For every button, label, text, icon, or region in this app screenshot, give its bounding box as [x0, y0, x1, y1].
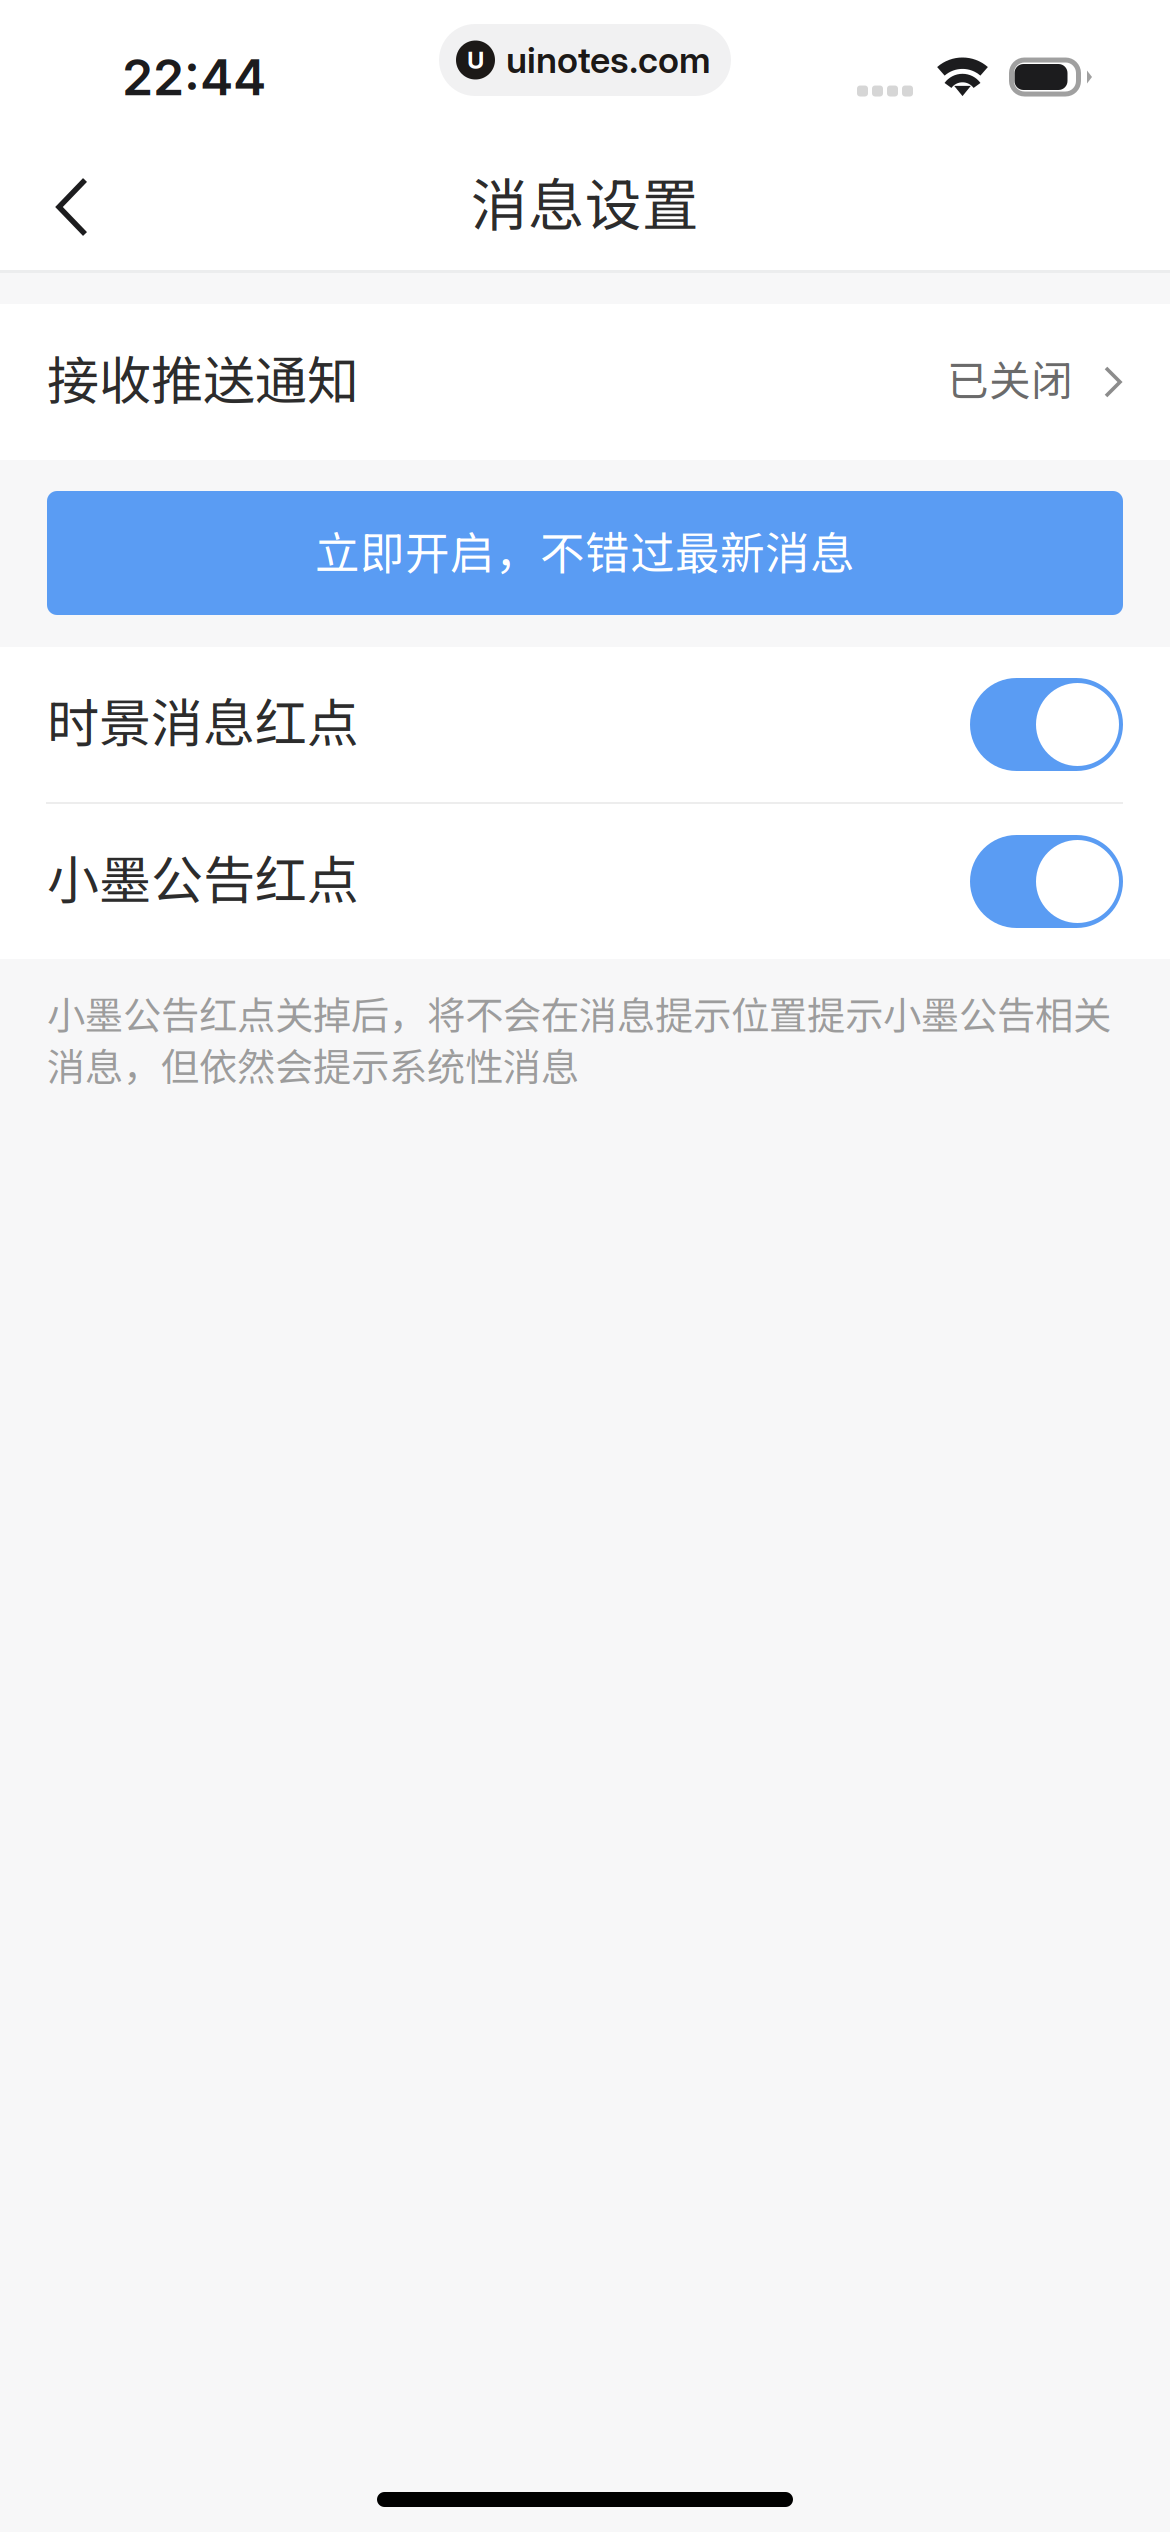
staticText: 小墨公告红点 — [47, 839, 359, 914]
staticText: 已关闭 — [947, 348, 1073, 408]
staticText: U — [467, 45, 484, 74]
button[interactable]: Back — [16, 140, 128, 250]
button[interactable]: 接收推送通知 — [0, 304, 1170, 460]
button[interactable]: 立即开启，不错过最新消息 — [47, 491, 1123, 615]
button[interactable]: 小墨公告红点 — [0, 804, 1170, 959]
staticText: 接收推送通知 — [47, 339, 359, 415]
button[interactable]: 时景消息红点 — [0, 647, 1170, 802]
staticText: 小墨公告红点关掉后，将不会在消息提示位置提示小墨公告相关消息，但依然会提示系统性… — [47, 985, 1111, 1092]
staticText: uinotes.com — [506, 38, 711, 82]
staticText: 消息设置 — [471, 160, 699, 242]
staticText: 22:44 — [122, 47, 266, 107]
staticText: 立即开启，不错过最新消息 — [315, 518, 855, 582]
staticText: 时景消息红点 — [47, 682, 359, 757]
